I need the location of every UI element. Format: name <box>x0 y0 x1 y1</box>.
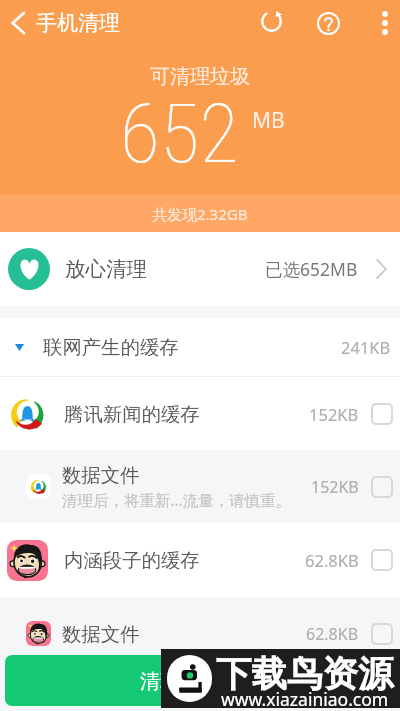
button[interactable]: Select item <box>371 623 393 645</box>
button[interactable]: Open <box>368 254 394 284</box>
button[interactable]: 放心清理 <box>0 232 400 306</box>
button[interactable]: More options <box>367 0 400 46</box>
button[interactable]: 手机清理 <box>36 0 120 46</box>
staticText: 152KB <box>309 403 359 425</box>
staticText: 下载鸟资源 <box>216 652 394 697</box>
staticText: 清理652MB <box>140 667 246 694</box>
button[interactable]: 清理652MB <box>5 655 395 706</box>
button[interactable]: Select item <box>371 549 393 571</box>
staticText: 62.8KB <box>306 623 359 645</box>
staticText: 可清理垃圾 <box>150 64 250 89</box>
button[interactable]: 腾讯新闻的缓存 <box>0 377 400 450</box>
staticText: 数据文件 <box>62 463 140 487</box>
staticText: 652 <box>120 86 239 182</box>
staticText: 腾讯新闻的缓存 <box>64 402 200 426</box>
staticText: 放心清理 <box>65 256 147 282</box>
button[interactable]: Help <box>305 0 351 46</box>
staticText: 清理后，将重新…流量，请慎重。 <box>62 489 292 510</box>
button[interactable]: Back <box>0 0 36 46</box>
staticText: 数据文件 <box>62 622 140 646</box>
staticText: 内涵段子的缓存 <box>64 548 200 572</box>
staticText: 共发现2.32GB <box>152 204 248 224</box>
staticText: 联网产生的缓存 <box>43 335 179 359</box>
staticText: 152KB <box>311 476 359 498</box>
staticText: 已选652MB <box>265 257 358 281</box>
staticText: 241KB <box>341 336 391 358</box>
staticText: www.xiazainiao.com <box>221 687 389 711</box>
staticText: 62.8KB <box>305 549 359 571</box>
button[interactable]: Refresh <box>249 0 294 46</box>
button[interactable]: Select item <box>371 476 393 498</box>
staticText: 手机清理 <box>36 10 120 36</box>
button[interactable]: 联网产生的缓存 <box>0 318 400 376</box>
staticText: MB <box>252 106 285 135</box>
button[interactable]: Select item <box>371 403 393 425</box>
button[interactable]: 数据文件 <box>0 450 400 523</box>
button[interactable]: 内涵段子的缓存 <box>0 523 400 597</box>
